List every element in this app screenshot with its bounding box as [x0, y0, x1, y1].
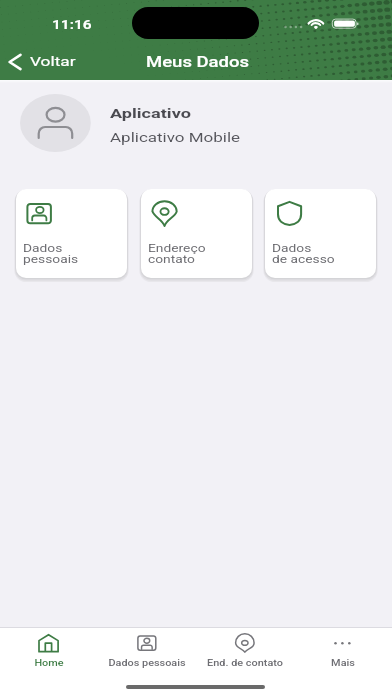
button[interactable]: Voltar [2, 46, 82, 76]
button[interactable]: Dados pessoais [98, 628, 196, 674]
staticText: contato [148, 252, 195, 265]
staticText: de acesso [272, 252, 335, 265]
staticText: pessoais [23, 252, 79, 265]
staticText: Aplicativo [110, 106, 191, 121]
button[interactable]: Mais [294, 628, 392, 674]
staticText: Dados [272, 241, 312, 254]
button[interactable]: End. de contato [196, 628, 294, 674]
staticText: 11:16 [52, 17, 92, 32]
staticText: Dados pessoais [98, 658, 196, 668]
button[interactable]: Dados [16, 189, 127, 278]
staticText: Home [0, 658, 98, 668]
staticText: Meus Dados [146, 54, 249, 71]
staticText: Dados [23, 241, 63, 254]
button[interactable]: Dados [265, 189, 376, 278]
button[interactable]: Endereço [141, 189, 252, 278]
staticText: Endereço [148, 241, 206, 254]
staticText: Voltar [30, 54, 76, 69]
staticText: End. de contato [196, 658, 294, 668]
button[interactable]: Home [0, 628, 98, 674]
staticText: Aplicativo Mobile [110, 129, 241, 145]
staticText: Mais [294, 658, 392, 668]
